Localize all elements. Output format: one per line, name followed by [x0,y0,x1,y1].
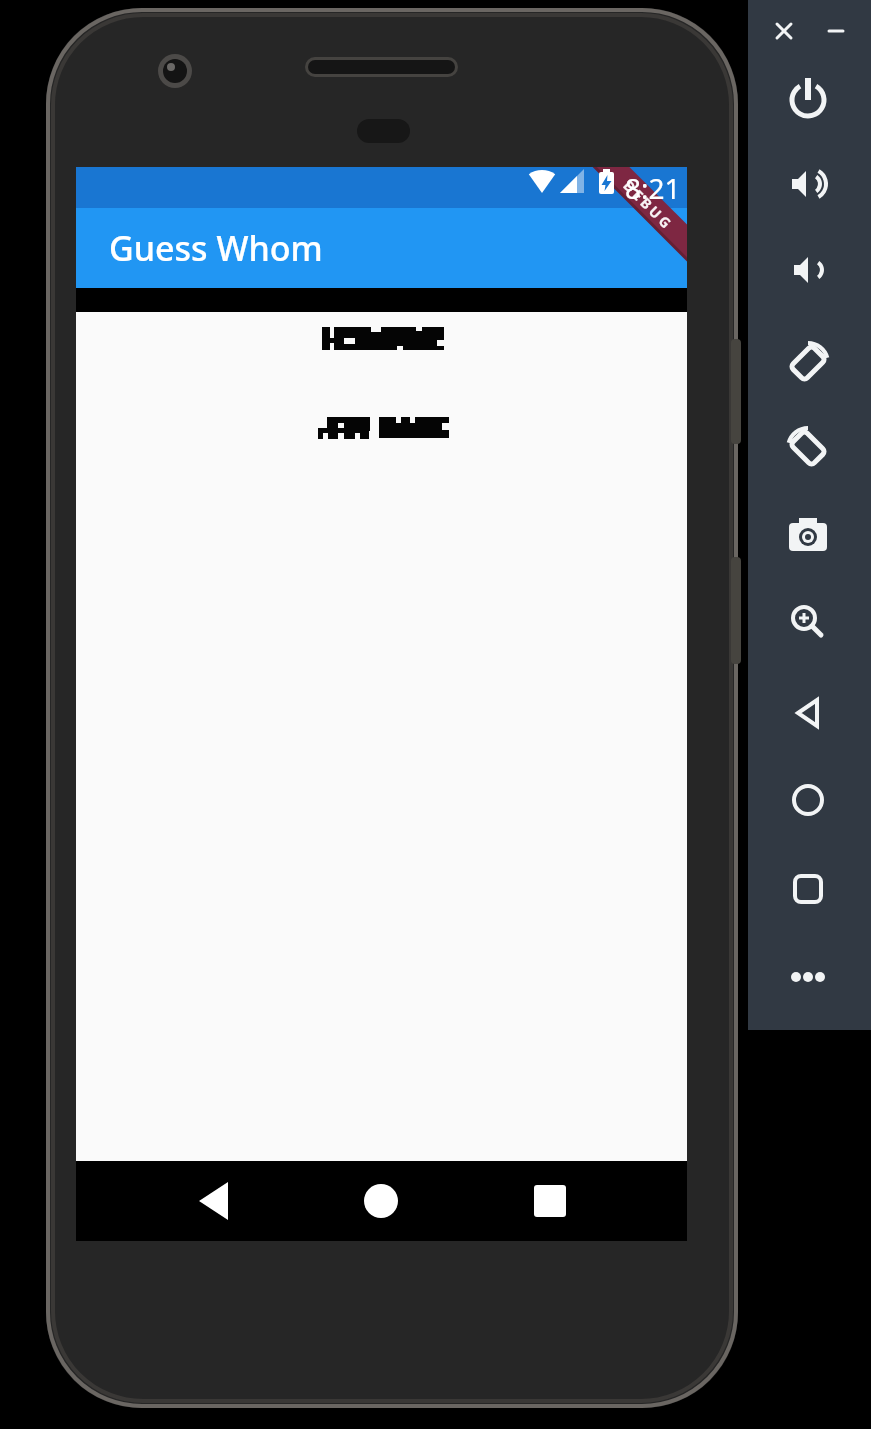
button[interactable] [783,688,833,738]
button[interactable] [783,245,833,295]
button[interactable] [783,6,833,56]
button[interactable] [783,864,833,914]
button[interactable] [783,338,833,388]
button[interactable] [783,775,833,825]
button[interactable] [783,73,833,123]
button[interactable] [316,317,446,352]
button[interactable] [783,511,833,561]
staticText: 8:21 [625,169,681,207]
button[interactable] [783,423,833,473]
button[interactable]: Guess Whom [76,208,687,288]
staticText: Guess Whom [109,225,323,271]
button[interactable] [525,1176,575,1226]
button[interactable] [356,1176,406,1226]
button[interactable] [312,407,448,442]
button[interactable] [762,8,806,52]
staticText: DEBUG [619,176,678,235]
button[interactable] [189,1176,239,1226]
button[interactable] [783,159,833,209]
button[interactable] [783,597,833,647]
button[interactable] [783,952,833,1002]
